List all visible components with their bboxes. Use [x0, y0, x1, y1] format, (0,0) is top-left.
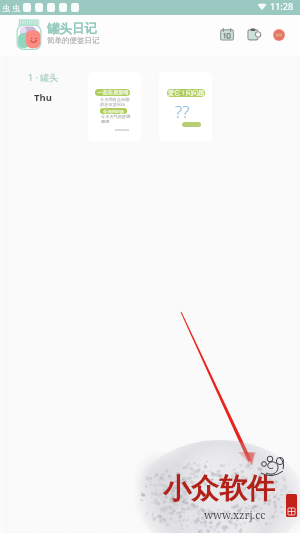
button[interactable]: Calendar: [220, 28, 234, 41]
staticText: ??: [175, 100, 190, 123]
staticText: 罐头日记: [47, 21, 97, 37]
button[interactable]: 爱它！问问题: [159, 72, 212, 142]
staticText: 简单的便签日记: [47, 36, 100, 45]
staticText: Thu: [34, 91, 52, 104]
button[interactable]: Profile: [273, 29, 285, 41]
staticText: 爱它！问问题: [168, 89, 204, 97]
button[interactable]: 一起在屋里咯: [88, 72, 141, 142]
button[interactable]: Notes: [247, 28, 261, 41]
staticText: 一起在屋里咯: [97, 89, 129, 96]
staticText: 今天我有点无聊 就在这里玩玩: [100, 97, 130, 107]
staticText: 11:28: [270, 0, 294, 12]
staticText: 今天天气很好哦 嗯嗯: [101, 114, 131, 124]
staticText: 今天的记录: [103, 109, 124, 114]
button[interactable]: App icon: [16, 19, 42, 50]
staticText: www.xzrj.cc: [204, 508, 266, 522]
staticText: 1 · 罐头: [28, 71, 59, 83]
staticText: 虫 虫: [2, 2, 21, 13]
staticText: 小众软件: [163, 471, 275, 506]
